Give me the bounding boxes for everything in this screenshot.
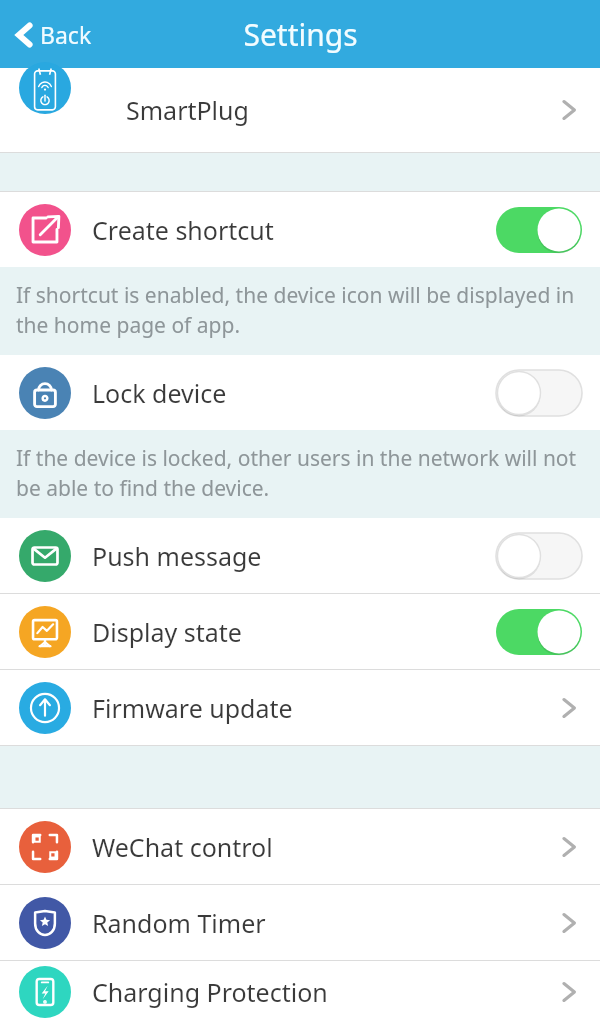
staticText: Random Timer [92,906,266,940]
button[interactable]: Back [8,13,98,56]
staticText: Lock device [92,376,227,410]
button[interactable]: Firmware update [0,670,600,745]
button[interactable]: Off [496,370,582,416]
staticText: Charging Protection [92,975,328,1009]
button[interactable]: WeChat control [0,809,600,884]
button[interactable]: Push message [0,518,600,593]
button[interactable]: Lock device [0,355,600,430]
button[interactable]: SmartPlug [0,68,600,152]
staticText: Create shortcut [92,213,274,247]
button[interactable]: Random Timer [0,885,600,960]
button[interactable]: On [496,207,582,253]
staticText: If the device is locked, other users in … [16,444,586,502]
staticText: Back [40,19,92,50]
button[interactable]: On [496,609,582,655]
staticText: If shortcut is enabled, the device icon … [16,281,586,339]
staticText: SmartPlug [126,93,249,127]
button[interactable]: Off [496,533,582,579]
staticText: Display state [92,615,242,649]
staticText: Firmware update [92,691,293,725]
button[interactable]: Create shortcut [0,192,600,267]
button[interactable]: Display state [0,594,600,669]
staticText: WeChat control [92,830,273,864]
button[interactable]: Charging Protection [0,961,600,1023]
staticText: Push message [92,539,262,573]
staticText: Settings [243,14,358,55]
